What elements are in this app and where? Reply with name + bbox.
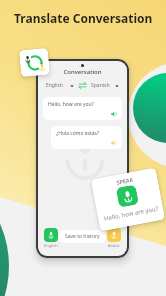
button[interactable]: Swap languages <box>78 81 87 90</box>
button[interactable]: Hello, how are you? <box>43 97 122 120</box>
staticText: Spanish <box>91 82 110 89</box>
staticText: Hello, how are you? <box>103 205 159 223</box>
button[interactable]: SPEAK <box>91 167 165 232</box>
staticText: ¿Hola cómo estás? <box>56 130 100 137</box>
staticText: Arabic <box>108 243 120 248</box>
button[interactable]: Spanish <box>90 82 120 89</box>
staticText: Translate Conversation <box>14 10 153 26</box>
staticText: Hello, how are you? <box>48 101 94 108</box>
button[interactable]: Speak English <box>44 228 58 242</box>
button[interactable]: ¿Hola cómo estás? <box>51 126 122 149</box>
staticText: English <box>46 82 64 89</box>
button[interactable]: Swap languages <box>19 48 50 77</box>
staticText: English <box>44 243 58 248</box>
staticText: Save to history <box>65 233 100 240</box>
button[interactable]: Speak Arabic <box>107 228 121 242</box>
staticText: SPEAK <box>116 176 134 186</box>
staticText: Conversation <box>38 68 127 76</box>
button[interactable]: English <box>45 82 75 89</box>
button[interactable]: Save to history <box>59 230 106 243</box>
